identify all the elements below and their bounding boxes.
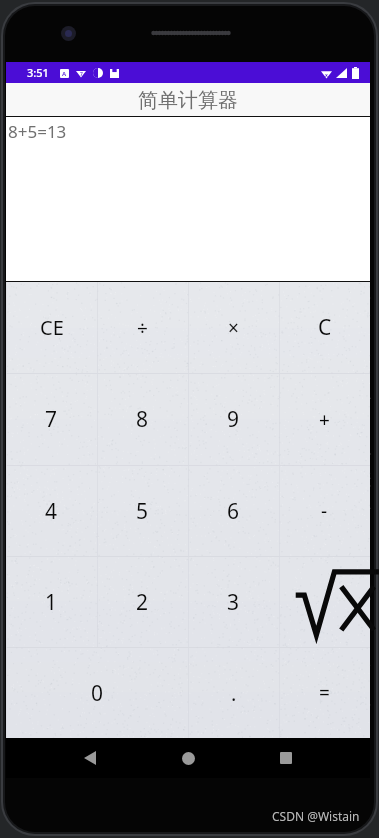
staticText: CE (40, 314, 64, 341)
button[interactable]: Recent apps (268, 740, 304, 776)
staticText: x (325, 72, 328, 79)
staticText: ÷ (137, 315, 148, 341)
staticText: 0 (91, 679, 104, 708)
staticText: - (321, 498, 328, 524)
staticText: 7 (45, 405, 58, 434)
staticText: 3 (227, 588, 240, 617)
staticText: 7 (80, 71, 83, 78)
button[interactable]: + (279, 374, 370, 465)
staticText: CSDN @Wistain (272, 808, 360, 824)
staticText: 简单计算器 (138, 88, 238, 113)
staticText: 3:51 (27, 65, 49, 80)
button[interactable]: ÷ (97, 282, 188, 373)
button[interactable]: × (188, 282, 279, 373)
button[interactable]: Back (72, 740, 108, 776)
staticText: + (319, 407, 330, 433)
staticText: A (62, 70, 67, 78)
button[interactable]: 1 (6, 557, 97, 647)
staticText: 5 (136, 497, 149, 526)
staticText: 8+5=13 (8, 120, 67, 143)
staticText: × (228, 315, 239, 341)
button[interactable]: 6 (188, 466, 279, 556)
button[interactable]: Home (170, 740, 206, 776)
button[interactable]: 5 (97, 466, 188, 556)
staticText: 6 (227, 497, 240, 526)
button[interactable]: 8 (97, 374, 188, 465)
staticText: 2 (136, 588, 149, 617)
button[interactable]: CE (6, 282, 97, 373)
staticText: = (319, 680, 330, 706)
button[interactable]: C (279, 282, 370, 373)
button[interactable]: 3 (188, 557, 279, 647)
staticText: 8 (136, 405, 149, 434)
staticText: 4 (45, 497, 58, 526)
staticText: C (318, 313, 332, 342)
button[interactable]: 2 (97, 557, 188, 647)
button[interactable]: Square root (279, 557, 370, 647)
button[interactable]: = (279, 648, 370, 738)
button[interactable]: 4 (6, 466, 97, 556)
button[interactable]: 9 (188, 374, 279, 465)
button[interactable]: . (188, 648, 279, 738)
staticText: . (231, 680, 237, 707)
staticText: 9 (227, 405, 240, 434)
button[interactable]: - (279, 466, 370, 556)
button[interactable]: 0 (6, 648, 188, 738)
button[interactable]: 7 (6, 374, 97, 465)
staticText: 1 (45, 588, 58, 617)
